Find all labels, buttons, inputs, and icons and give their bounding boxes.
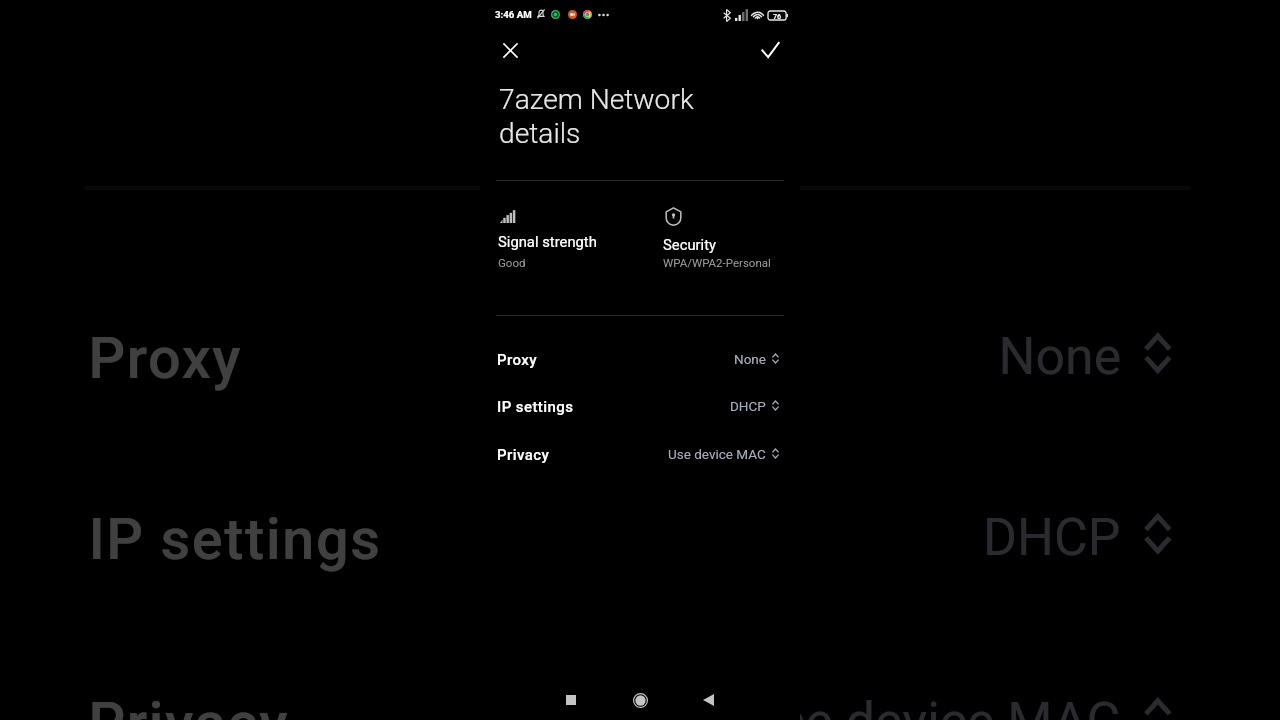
staticText: Privacy — [88, 689, 292, 720]
staticText: Use device MAC — [668, 446, 766, 462]
button[interactable]: Back — [691, 683, 725, 717]
staticText: None — [734, 351, 766, 367]
button[interactable]: IP settings — [23, 447, 1252, 628]
staticText: Use device MAC — [745, 689, 1121, 720]
button[interactable]: Privacy — [23, 632, 1252, 720]
staticText: 76 — [773, 12, 782, 20]
button[interactable]: Home — [623, 683, 657, 717]
staticText: IP settings — [88, 505, 384, 574]
staticText: Proxy — [497, 351, 538, 369]
button[interactable]: Privacy — [480, 431, 800, 478]
button[interactable]: Proxy — [480, 336, 800, 383]
staticText: Signal strength — [498, 233, 597, 250]
staticText: Good — [498, 256, 526, 269]
button[interactable]: Proxy — [23, 267, 1252, 447]
staticText: WPA/WPA2-Personal — [663, 256, 771, 269]
staticText: Proxy — [88, 324, 246, 393]
staticText: 7azem Network details — [499, 83, 714, 150]
staticText: Security — [663, 236, 716, 253]
staticText: None — [998, 324, 1121, 386]
button[interactable]: IP settings — [480, 383, 800, 430]
staticText: WPA/WPA2-Personal — [726, 0, 1140, 9]
staticText: 3:46 AM — [495, 9, 532, 20]
staticText: DHCP — [730, 398, 766, 414]
staticText: IP settings — [497, 398, 574, 416]
button[interactable]: Recents — [554, 683, 588, 717]
staticText: Privacy — [497, 446, 550, 464]
staticText: DHCP — [983, 505, 1121, 566]
button[interactable]: Save — [750, 30, 790, 70]
button[interactable]: Close — [490, 30, 530, 70]
